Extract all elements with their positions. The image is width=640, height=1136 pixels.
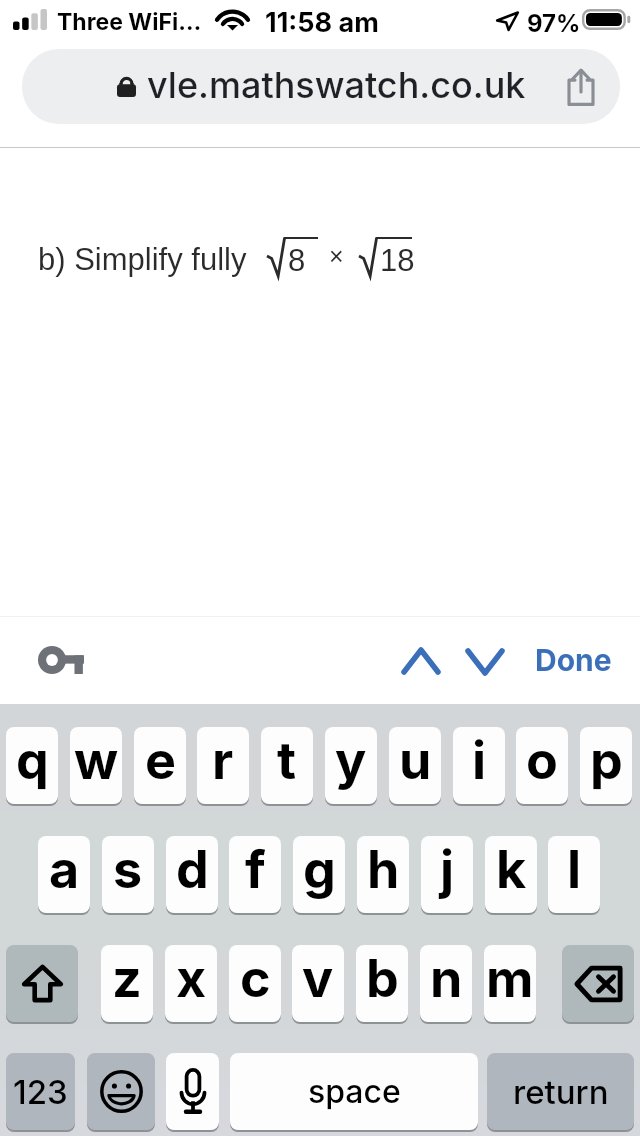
- button[interactable]: s: [102, 836, 154, 913]
- button[interactable]: 123: [6, 1053, 75, 1130]
- button[interactable]: b: [356, 945, 408, 1022]
- button[interactable]: t: [261, 727, 313, 804]
- staticText: return: [513, 1072, 609, 1112]
- button[interactable]: c: [229, 945, 281, 1022]
- button[interactable]: k: [485, 836, 537, 913]
- staticText: y: [335, 729, 367, 792]
- button[interactable]: n: [420, 945, 472, 1022]
- button[interactable]: y: [325, 727, 377, 804]
- button[interactable]: d: [166, 836, 218, 913]
- button[interactable]: Backspace: [562, 945, 634, 1022]
- staticText: 11:58 am: [265, 6, 379, 39]
- staticText: q: [16, 729, 49, 792]
- button[interactable]: Passwords: [31, 635, 91, 685]
- staticText: f: [245, 838, 266, 901]
- staticText: k: [496, 838, 527, 901]
- button[interactable]: o: [516, 727, 568, 804]
- button[interactable]: g: [293, 836, 345, 913]
- staticText: 18: [380, 243, 415, 278]
- staticText: s: [113, 838, 143, 901]
- staticText: c: [240, 947, 271, 1010]
- staticText: b) Simplify fully: [38, 242, 247, 277]
- staticText: space: [308, 1072, 401, 1111]
- staticText: u: [399, 729, 432, 792]
- button[interactable]: i: [453, 727, 505, 804]
- staticText: ×: [329, 242, 344, 270]
- staticText: j: [440, 838, 455, 901]
- staticText: w: [74, 729, 119, 792]
- staticText: b: [366, 947, 399, 1010]
- button[interactable]: z: [101, 945, 153, 1022]
- button[interactable]: Emoji: [87, 1053, 155, 1130]
- staticText: x: [176, 947, 207, 1010]
- button[interactable]: space: [230, 1053, 478, 1130]
- button[interactable]: m: [484, 945, 536, 1022]
- button[interactable]: vle.mathswatch.co.uk: [22, 49, 620, 124]
- staticText: e: [145, 729, 176, 792]
- button[interactable]: Shift: [6, 945, 78, 1022]
- button[interactable]: x: [165, 945, 217, 1022]
- button[interactable]: w: [70, 727, 122, 804]
- button[interactable]: Next field: [459, 637, 511, 687]
- staticText: 8: [288, 243, 306, 278]
- staticText: a: [49, 838, 80, 901]
- staticText: i: [472, 729, 487, 792]
- button[interactable]: h: [357, 836, 409, 913]
- button[interactable]: r: [197, 727, 249, 804]
- staticText: v: [302, 947, 334, 1010]
- staticText: h: [367, 838, 400, 901]
- button[interactable]: u: [389, 727, 441, 804]
- button[interactable]: p: [580, 727, 632, 804]
- staticText: Three WiFi…: [57, 8, 202, 36]
- button[interactable]: j: [421, 836, 473, 913]
- staticText: g: [303, 838, 336, 901]
- button[interactable]: l: [548, 836, 600, 913]
- staticText: p: [590, 729, 623, 792]
- staticText: o: [526, 729, 558, 792]
- button[interactable]: Share: [559, 65, 603, 109]
- button[interactable]: Previous field: [395, 636, 447, 686]
- button[interactable]: Dictation: [166, 1053, 219, 1130]
- button[interactable]: a: [38, 836, 90, 913]
- button[interactable]: return: [487, 1053, 634, 1130]
- staticText: m: [486, 947, 534, 1010]
- button[interactable]: f: [229, 836, 281, 913]
- staticText: d: [176, 838, 209, 901]
- staticText: t: [277, 729, 297, 792]
- staticText: Done: [535, 642, 612, 678]
- staticText: z: [112, 947, 142, 1010]
- staticText: 123: [13, 1072, 68, 1112]
- staticText: 97%: [527, 9, 581, 38]
- button[interactable]: Done: [528, 630, 618, 690]
- staticText: n: [430, 947, 463, 1010]
- button[interactable]: e: [134, 727, 186, 804]
- staticText: l: [567, 838, 582, 901]
- staticText: vle.mathswatch.co.uk: [147, 63, 526, 107]
- staticText: r: [212, 729, 234, 792]
- button[interactable]: v: [292, 945, 344, 1022]
- button[interactable]: q: [6, 727, 58, 804]
